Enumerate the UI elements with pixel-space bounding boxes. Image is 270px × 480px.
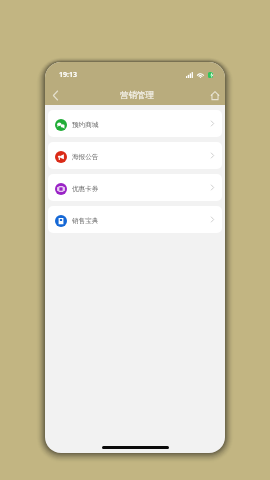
button[interactable]: Back xyxy=(47,87,63,103)
staticText: 19:13 xyxy=(59,70,77,80)
button[interactable]: 优惠卡券 xyxy=(48,174,222,201)
button[interactable]: 预约商城 xyxy=(48,110,222,137)
staticText: 营销管理 xyxy=(120,90,154,101)
staticText: 销售宝典 xyxy=(72,217,99,225)
staticText: 优惠卡券 xyxy=(72,185,99,193)
staticText: 海报公告 xyxy=(72,153,99,161)
staticText: 预约商城 xyxy=(72,121,99,129)
button[interactable]: Home xyxy=(208,88,222,102)
button[interactable]: 销售宝典 xyxy=(48,206,222,233)
button[interactable]: 海报公告 xyxy=(48,142,222,169)
